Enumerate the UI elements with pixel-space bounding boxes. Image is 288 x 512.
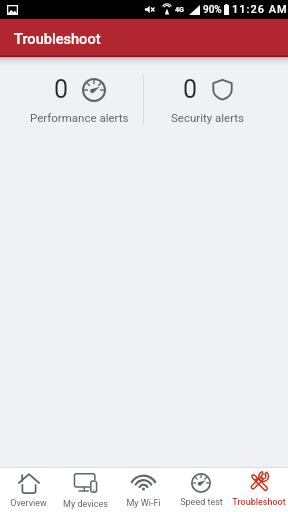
staticText: 0 xyxy=(183,75,198,104)
staticText: My devices xyxy=(63,499,108,510)
staticText: My Wi-Fi xyxy=(126,498,161,509)
staticText: Security alerts xyxy=(171,111,245,124)
staticText: 11:26 AM xyxy=(232,3,288,16)
staticText: Speed test xyxy=(180,497,223,508)
staticText: 4G xyxy=(175,6,184,14)
button[interactable]: My devices xyxy=(57,471,114,510)
button[interactable]: Troubleshoot xyxy=(230,472,288,508)
button[interactable]: Speed test xyxy=(172,473,230,508)
staticText: 90% xyxy=(203,4,222,16)
staticText: Overview xyxy=(10,498,47,509)
staticText: 0 xyxy=(54,75,69,104)
button[interactable]: 0 xyxy=(144,65,272,124)
button[interactable]: My Wi-Fi xyxy=(114,471,172,509)
staticText: Performance alerts xyxy=(30,111,129,124)
staticText: Troubleshoot xyxy=(14,30,101,47)
button[interactable]: Overview xyxy=(0,472,57,509)
staticText: Troubleshoot xyxy=(232,497,286,508)
button[interactable]: 0 xyxy=(16,65,143,124)
